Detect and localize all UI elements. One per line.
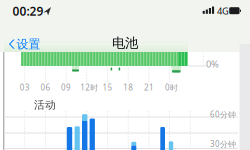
staticText: 60分钟	[210, 109, 236, 120]
staticText: 12时	[80, 82, 98, 93]
button[interactable]: 返回设置	[4, 35, 46, 53]
staticText: 4G	[217, 5, 229, 17]
staticText: 电池	[112, 35, 138, 51]
staticText: 21	[144, 82, 154, 93]
staticText: 06	[40, 82, 50, 93]
staticText: 15	[102, 82, 112, 93]
staticText: 03	[20, 82, 30, 93]
staticText: 设置	[16, 37, 40, 51]
staticText: 00:29	[12, 3, 43, 19]
staticText: 活动	[34, 98, 56, 111]
staticText: 09	[61, 82, 71, 93]
staticText: 30分钟	[210, 139, 236, 149]
staticText: 18	[123, 82, 133, 93]
staticText: 0时	[165, 82, 178, 93]
staticText: 0%	[206, 58, 219, 70]
